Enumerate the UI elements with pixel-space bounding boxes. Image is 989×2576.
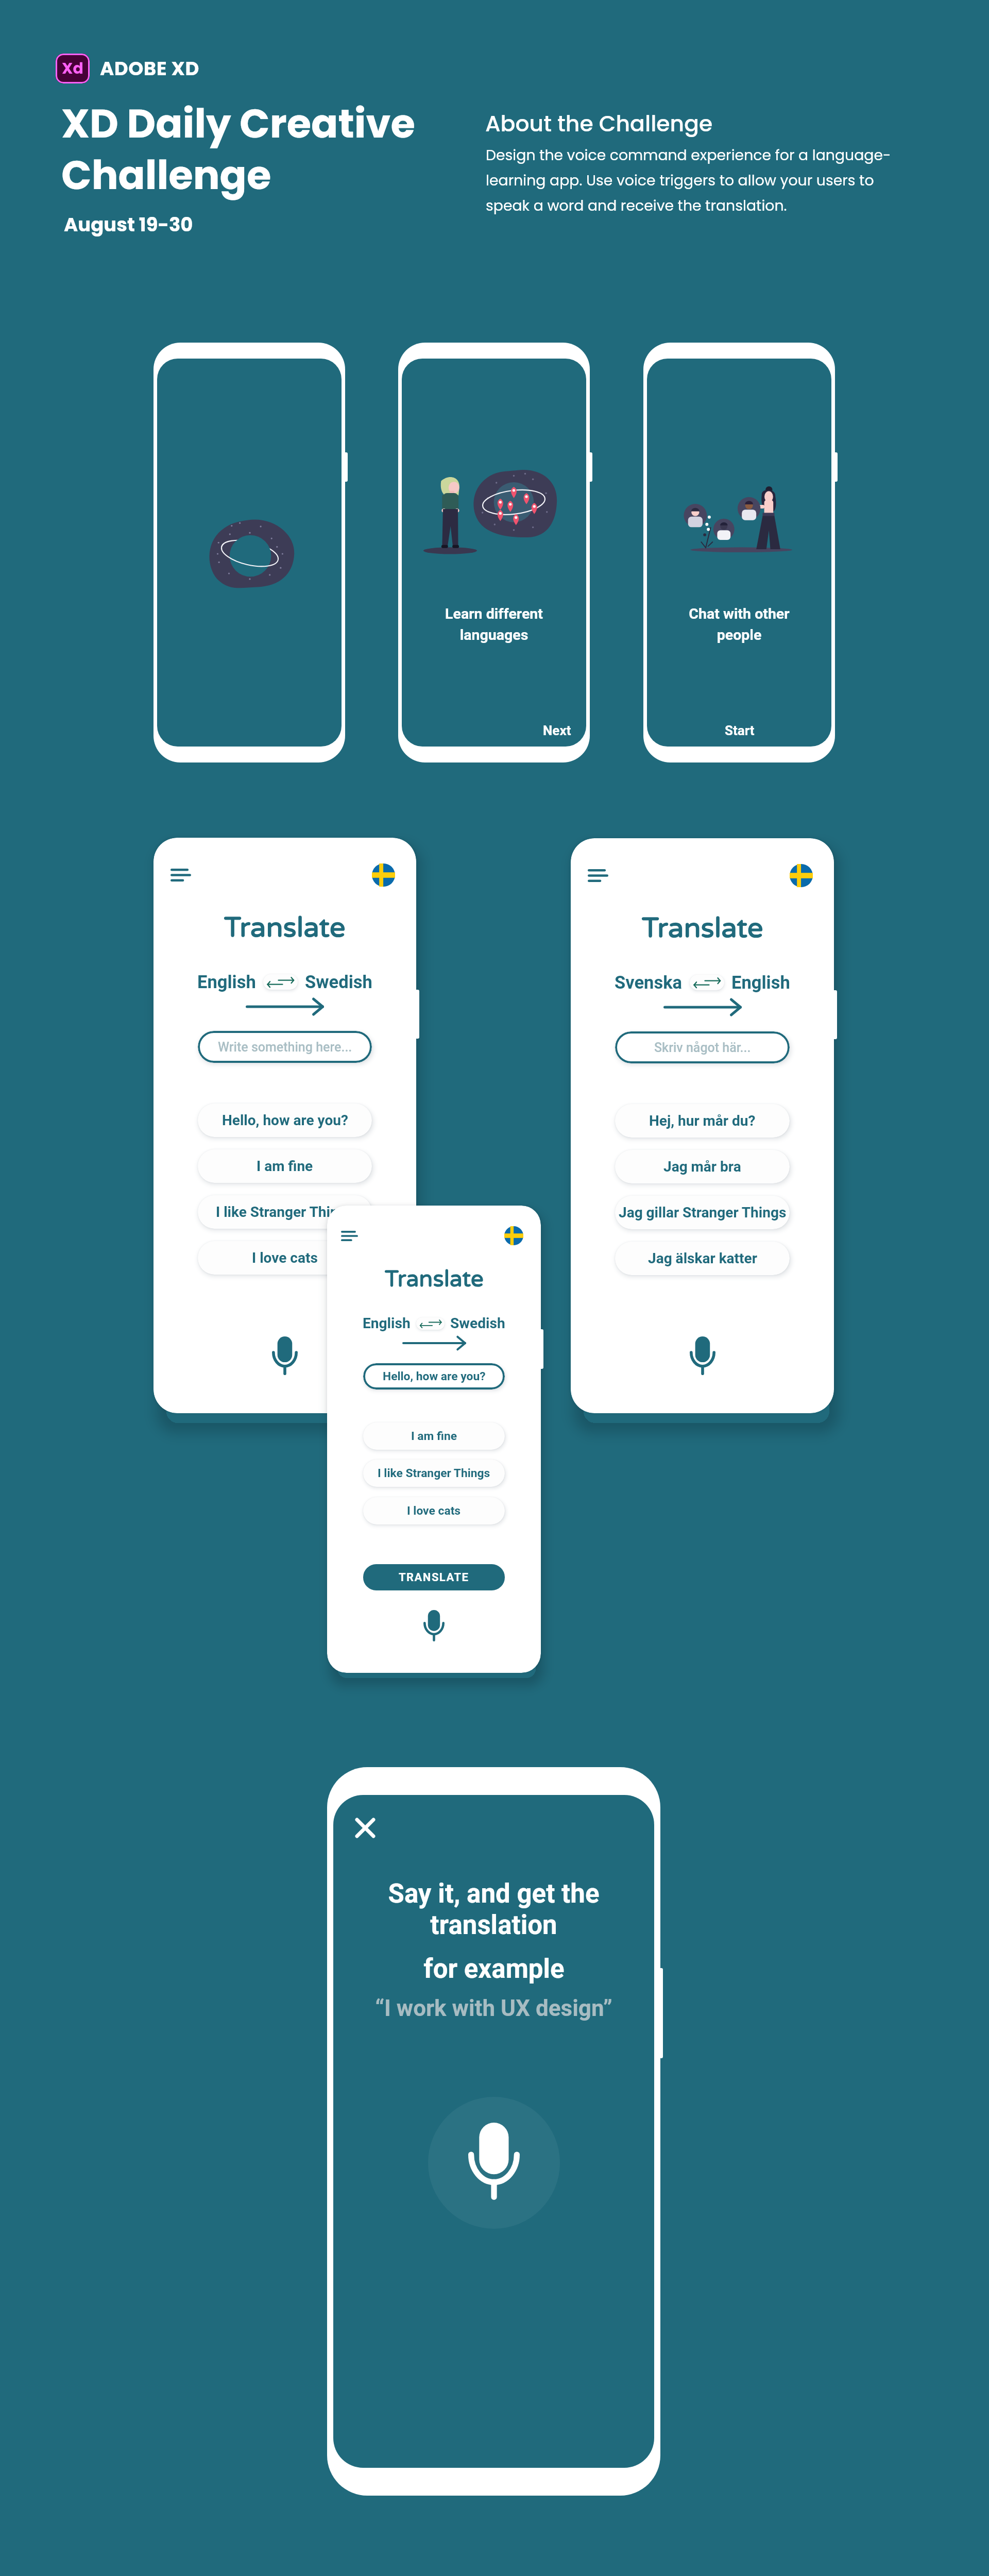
staticText: I like Stranger Things [378, 1466, 490, 1480]
button[interactable]: Start voice input [428, 2097, 560, 2229]
staticText: I like Stranger Things [216, 1204, 354, 1221]
staticText: Hello, how are you? [222, 1112, 348, 1129]
button[interactable]: Next [534, 717, 580, 744]
staticText: Write something here... [218, 1040, 352, 1055]
staticText: Swedish [450, 1315, 505, 1332]
button[interactable]: Menu [583, 864, 613, 887]
staticText: Chat with other people [689, 605, 790, 643]
button[interactable]: Jag älskar katter [615, 1242, 790, 1275]
staticText: Translate [385, 1265, 484, 1293]
staticText: Next [543, 723, 571, 738]
button[interactable]: I am fine [198, 1149, 372, 1183]
button[interactable]: Hello, how are you? [363, 1363, 505, 1389]
button[interactable]: Write something here... [198, 1031, 372, 1063]
staticText: XD Daily Creative Challenge [61, 96, 415, 203]
staticText: August 19-30 [64, 211, 193, 238]
staticText: Translate [224, 911, 346, 945]
staticText: Jag älskar katter [648, 1250, 757, 1267]
staticText: Skriv något här... [654, 1040, 751, 1055]
button[interactable]: Jag gillar Stranger Things [615, 1196, 790, 1229]
staticText: Xd [62, 58, 83, 79]
staticText: English [197, 972, 256, 992]
button[interactable]: I love cats [363, 1497, 505, 1524]
staticText: Start [725, 723, 755, 738]
button[interactable]: Menu [166, 863, 196, 886]
staticText: Jag mår bra [663, 1158, 741, 1175]
button[interactable]: Voice input [415, 1606, 453, 1645]
staticText: Translate [642, 911, 763, 945]
button[interactable]: Language flag [371, 862, 396, 887]
staticText: Hej, hur mår du? [649, 1112, 756, 1129]
staticText: “I work with UX design” [375, 1995, 612, 2022]
button[interactable]: Voice input [679, 1332, 726, 1379]
staticText: English [363, 1315, 411, 1332]
staticText: I love cats [407, 1504, 461, 1518]
button[interactable]: Voice input [261, 1332, 309, 1379]
button[interactable]: I love cats [198, 1241, 372, 1275]
button[interactable]: Language flag [504, 1226, 524, 1246]
button[interactable]: Swap languages [263, 974, 298, 990]
staticText: Swedish [305, 972, 372, 992]
staticText: Hello, how are you? [383, 1369, 486, 1383]
staticText: About the Challenge [485, 108, 713, 139]
button[interactable]: I like Stranger Things [363, 1460, 505, 1487]
staticText: Design the voice command experience for … [486, 145, 913, 216]
staticText: Learn different languages [445, 605, 543, 643]
staticText: English [731, 972, 790, 993]
button[interactable]: Start [715, 717, 764, 744]
staticText: TRANSLATE [399, 1571, 469, 1584]
staticText: Jag gillar Stranger Things [619, 1204, 787, 1221]
button[interactable]: I am fine [363, 1422, 505, 1450]
button[interactable]: Swap languages [690, 975, 724, 990]
staticText: ADOBE XD [100, 55, 199, 82]
button[interactable]: Skriv något här... [615, 1031, 790, 1063]
staticText: I love cats [252, 1249, 318, 1266]
button[interactable]: TRANSLATE [363, 1564, 505, 1590]
staticText: Svenska [615, 972, 683, 993]
button[interactable]: Xd [56, 54, 199, 83]
button[interactable]: Hello, how are you? [198, 1104, 372, 1137]
button[interactable]: Language flag [789, 863, 813, 888]
button[interactable]: Jag mår bra [615, 1150, 790, 1183]
staticText: Say it, and get the translation [354, 1878, 634, 1941]
button[interactable]: Swap languages [416, 1317, 445, 1330]
button[interactable]: Menu [337, 1227, 362, 1245]
staticText: I am fine [411, 1429, 457, 1443]
button[interactable]: I like Stranger Things [198, 1195, 372, 1229]
button[interactable]: Close [348, 1810, 383, 1845]
staticText: I am fine [257, 1158, 313, 1175]
button[interactable]: Hej, hur mår du? [615, 1104, 790, 1138]
staticText: for example [423, 1954, 565, 1985]
